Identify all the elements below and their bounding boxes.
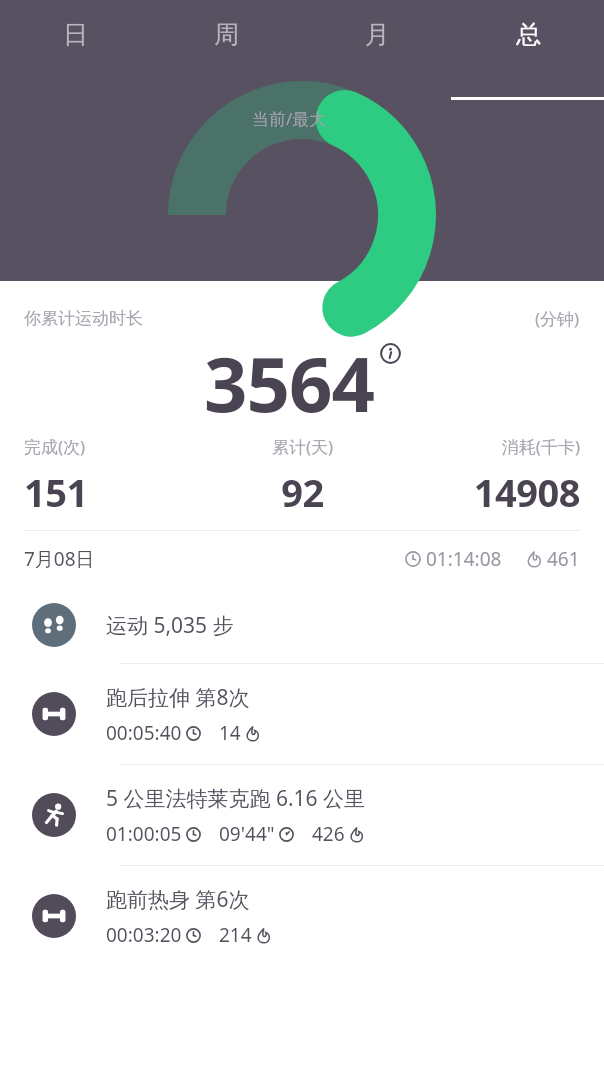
staticText: 月 [365, 19, 390, 50]
staticText: 跑后拉伸 第8次 [106, 683, 250, 712]
button[interactable]: 累计(天) [210, 435, 395, 518]
staticText: 151 [24, 466, 210, 518]
staticText: 周 [214, 19, 239, 50]
button[interactable]: 周 [151, 0, 302, 100]
staticText: 你累计运动时长 [24, 308, 143, 329]
button[interactable]: 跑前热身 第6次 [0, 866, 604, 966]
button[interactable]: 运动 5,035 步 [0, 587, 604, 663]
staticText: 总 [516, 19, 541, 50]
button[interactable]: 5 公里法特莱克跑 6.16 公里 [0, 765, 604, 865]
staticText: 214 [219, 922, 252, 948]
staticText: 14 [219, 720, 241, 746]
staticText: 消耗(千卡) [395, 435, 580, 458]
staticText: 14908 [395, 466, 580, 518]
staticText: (分钟) [535, 307, 580, 330]
staticText: 09'44" [219, 821, 275, 847]
staticText: 3564 [204, 331, 374, 435]
staticText: 01:14:08 [426, 546, 502, 572]
staticText: 运动 5,035 步 [106, 611, 234, 640]
staticText: 当前/最大 [252, 107, 327, 130]
staticText: 5 公里法特莱克跑 6.16 公里 [106, 784, 366, 813]
staticText: 跑前热身 第6次 [106, 885, 250, 914]
staticText: 累计(天) [210, 435, 395, 458]
button[interactable]: 完成(次) [24, 435, 210, 518]
button[interactable]: 总 [453, 0, 604, 100]
staticText: 92 [210, 466, 395, 518]
button[interactable]: 日 [0, 0, 151, 100]
staticText: 01:00:05 [106, 821, 182, 847]
staticText: 426 [312, 821, 345, 847]
button[interactable]: 消耗(千卡) [395, 435, 580, 518]
button[interactable]: Info [380, 343, 401, 364]
button[interactable]: 跑后拉伸 第8次 [0, 664, 604, 764]
button[interactable]: 7月08日 [24, 531, 580, 587]
button[interactable]: 月 [302, 0, 453, 100]
staticText: 461 [547, 546, 580, 572]
staticText: 完成(次) [24, 435, 210, 458]
staticText: 00:05:40 [106, 720, 182, 746]
staticText: 日 [63, 19, 88, 50]
staticText: 7月08日 [24, 546, 95, 572]
staticText: 00:03:20 [106, 922, 182, 948]
